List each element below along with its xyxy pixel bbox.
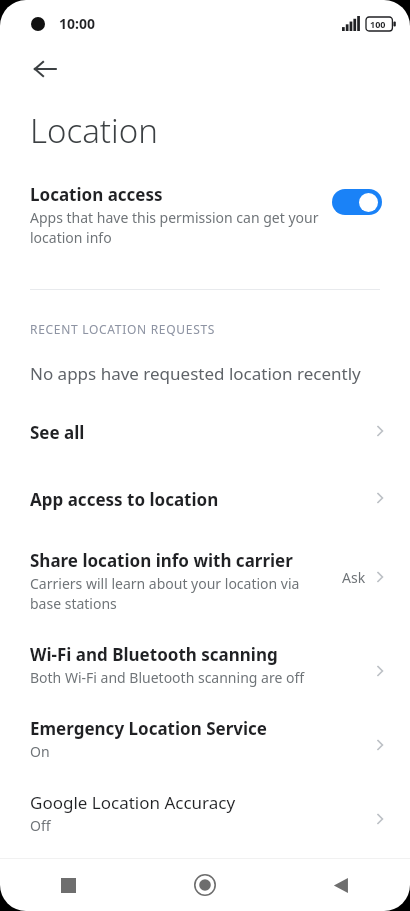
button[interactable]: Recent apps	[0, 859, 136, 911]
staticText: Wi-Fi and Bluetooth scanning	[30, 643, 278, 666]
staticText: Location	[30, 108, 158, 153]
staticText: App access to location	[30, 488, 219, 511]
staticText: Google Location Accuracy	[30, 791, 236, 814]
staticText: RECENT LOCATION REQUESTS	[30, 321, 216, 337]
staticText: Both Wi-Fi and Bluetooth scanning are of…	[30, 668, 305, 687]
button[interactable]: Home	[136, 859, 273, 911]
button[interactable]: Share location info with carrier	[0, 543, 410, 619]
staticText: Carriers will learn about your location …	[30, 574, 328, 613]
staticText: Off	[30, 816, 51, 835]
staticText: Apps that have this permission can get y…	[30, 208, 324, 248]
button[interactable]: Wi-Fi and Bluetooth scanning	[0, 637, 410, 693]
staticText: 10:00	[59, 14, 95, 33]
staticText: Location access	[30, 183, 163, 206]
staticText: Ask	[342, 568, 366, 587]
button[interactable]: Location access toggle	[332, 189, 382, 215]
staticText: Emergency Location Service	[30, 717, 267, 740]
staticText: Share location info with carrier	[30, 549, 293, 572]
button[interactable]: See all	[0, 413, 410, 452]
staticText: On	[30, 742, 50, 761]
staticText: 100	[370, 18, 386, 30]
staticText: No apps have requested location recently	[30, 362, 361, 385]
button[interactable]: Location access	[0, 183, 410, 248]
staticText: See all	[30, 421, 85, 444]
button[interactable]: Google Location Accuracy	[0, 785, 410, 841]
button[interactable]: Back	[22, 46, 68, 92]
button[interactable]: App access to location	[0, 480, 410, 519]
button[interactable]: Emergency Location Service	[0, 711, 410, 767]
button[interactable]: Back	[273, 859, 410, 911]
